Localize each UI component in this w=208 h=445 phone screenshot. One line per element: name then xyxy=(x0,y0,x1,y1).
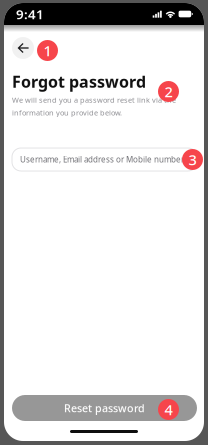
button[interactable]: Back xyxy=(12,37,34,59)
staticText: Forgot password xyxy=(12,71,146,92)
staticText: Username, Email address or Mobile number xyxy=(20,154,184,165)
staticText: information you provide below. xyxy=(12,108,122,117)
staticText: 4 xyxy=(164,400,172,419)
staticText: 3 xyxy=(188,150,196,169)
staticText: 9:41 xyxy=(16,5,44,23)
staticText: 2 xyxy=(164,82,172,101)
staticText: Reset password xyxy=(64,401,145,415)
staticText: We will send you a password reset link v… xyxy=(12,95,176,105)
button[interactable]: Reset password xyxy=(12,395,197,421)
staticText: 1 xyxy=(43,41,51,60)
